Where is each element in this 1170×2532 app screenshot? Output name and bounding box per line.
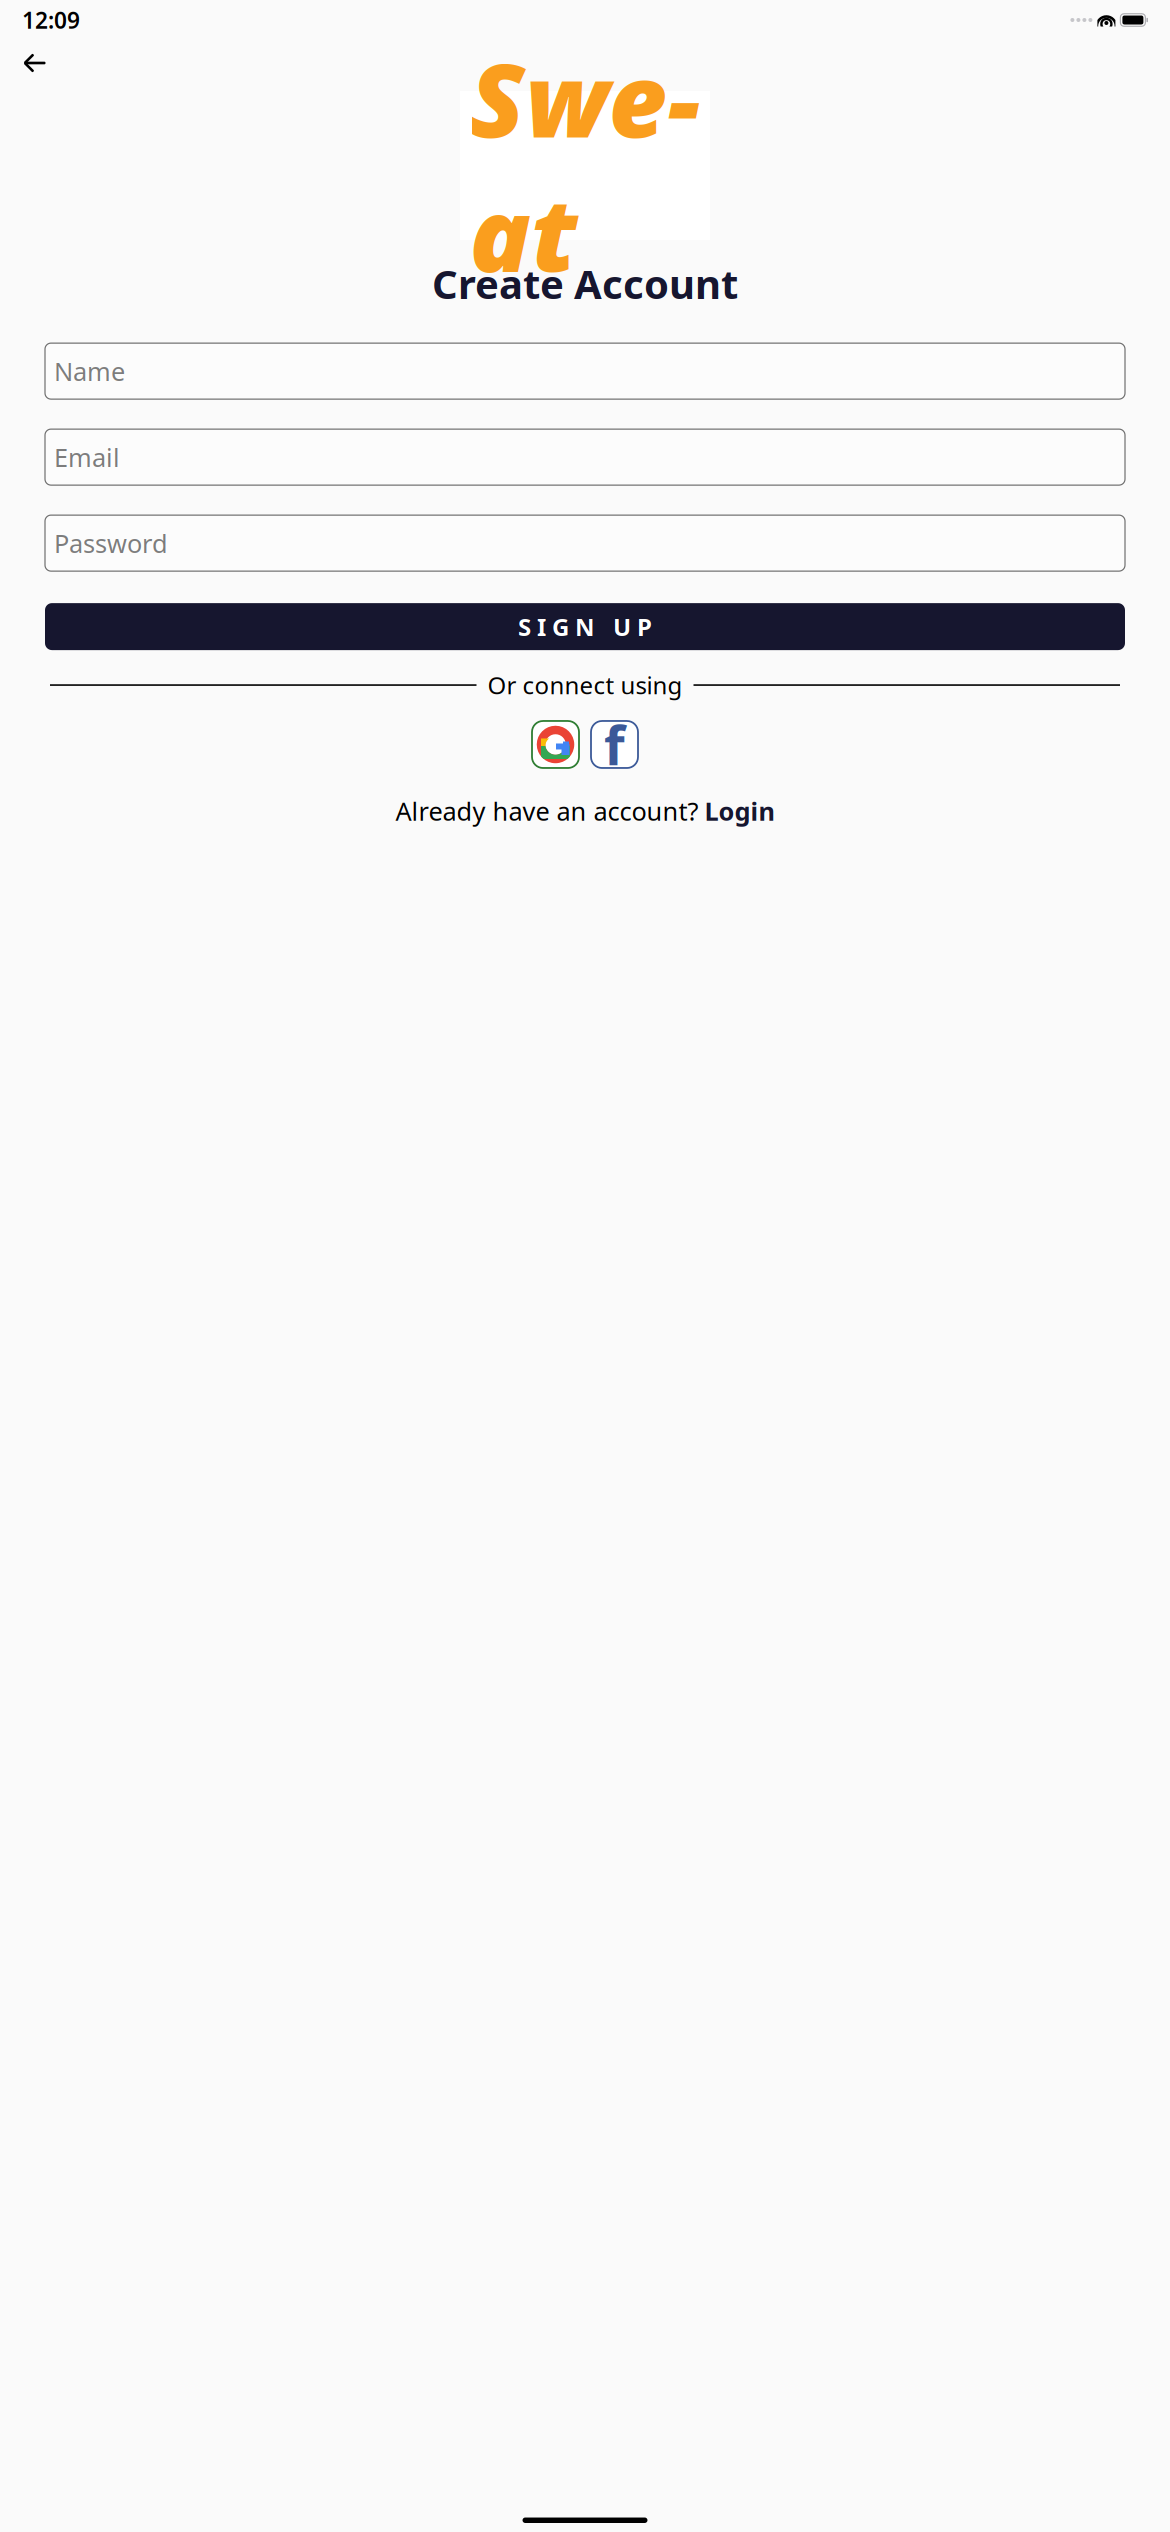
button[interactable]: Email <box>45 429 1125 485</box>
button[interactable]: Name <box>45 343 1125 399</box>
staticText: Already have an account? <box>395 794 698 828</box>
button[interactable]: S I G N U P <box>45 603 1125 650</box>
staticText: f <box>604 709 625 780</box>
staticText: Login <box>704 794 774 828</box>
button[interactable]: Back <box>22 43 66 83</box>
button[interactable]: Sign up with Facebook <box>591 721 638 768</box>
staticText: Name <box>54 354 125 388</box>
staticText: Or connect using <box>487 669 682 701</box>
staticText: Sweat <box>469 31 700 300</box>
staticText: Create Account <box>432 257 738 310</box>
staticText: S I G N U P <box>518 611 652 643</box>
button[interactable]: Already have an account? <box>395 794 774 828</box>
staticText: Password <box>54 526 168 560</box>
staticText: 12:09 <box>22 5 80 35</box>
button[interactable]: Sign up with Google <box>532 721 579 768</box>
button[interactable]: Password <box>45 515 1125 571</box>
staticText: Email <box>54 440 120 474</box>
